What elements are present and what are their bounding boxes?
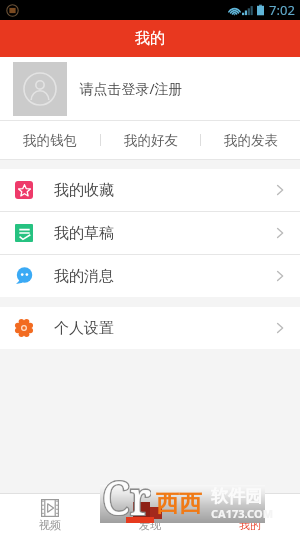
staticText: 我的钱包 [23, 132, 77, 149]
staticText: 个人设置 [54, 319, 114, 338]
button[interactable]: 我的 [200, 494, 300, 534]
staticText: 视频 [39, 518, 61, 532]
button[interactable]: 请点击登录/注册 [0, 57, 300, 120]
staticText: Cr [102, 467, 151, 516]
button[interactable]: 我的消息 [0, 255, 300, 297]
staticText: 我的草稿 [54, 224, 114, 243]
staticText: 西西 [156, 489, 202, 518]
button[interactable]: 视频 [0, 494, 100, 534]
staticText: 我的 [135, 29, 165, 48]
staticText: 我的好友 [124, 132, 178, 149]
button[interactable]: 我的发表 [201, 121, 300, 159]
staticText: 我的 [239, 518, 261, 532]
button[interactable]: 我的收藏 [0, 169, 300, 211]
staticText: 我的消息 [54, 267, 114, 286]
staticText: 我的收藏 [54, 181, 114, 200]
staticText: 请点击登录/注册 [79, 79, 183, 98]
button[interactable]: 我的草稿 [0, 212, 300, 254]
staticText: CA173.COM [211, 506, 274, 521]
button[interactable]: 发现 [100, 494, 200, 534]
button[interactable]: 个人设置 [0, 307, 300, 349]
staticText: 软件园 [211, 486, 262, 507]
staticText: 7:02 [269, 1, 295, 19]
staticText: 我的发表 [224, 132, 278, 149]
button[interactable]: 我的好友 [101, 121, 200, 159]
staticText: Cr [102, 467, 151, 516]
staticText: 发现 [139, 518, 161, 532]
button[interactable]: 我的钱包 [0, 121, 100, 159]
